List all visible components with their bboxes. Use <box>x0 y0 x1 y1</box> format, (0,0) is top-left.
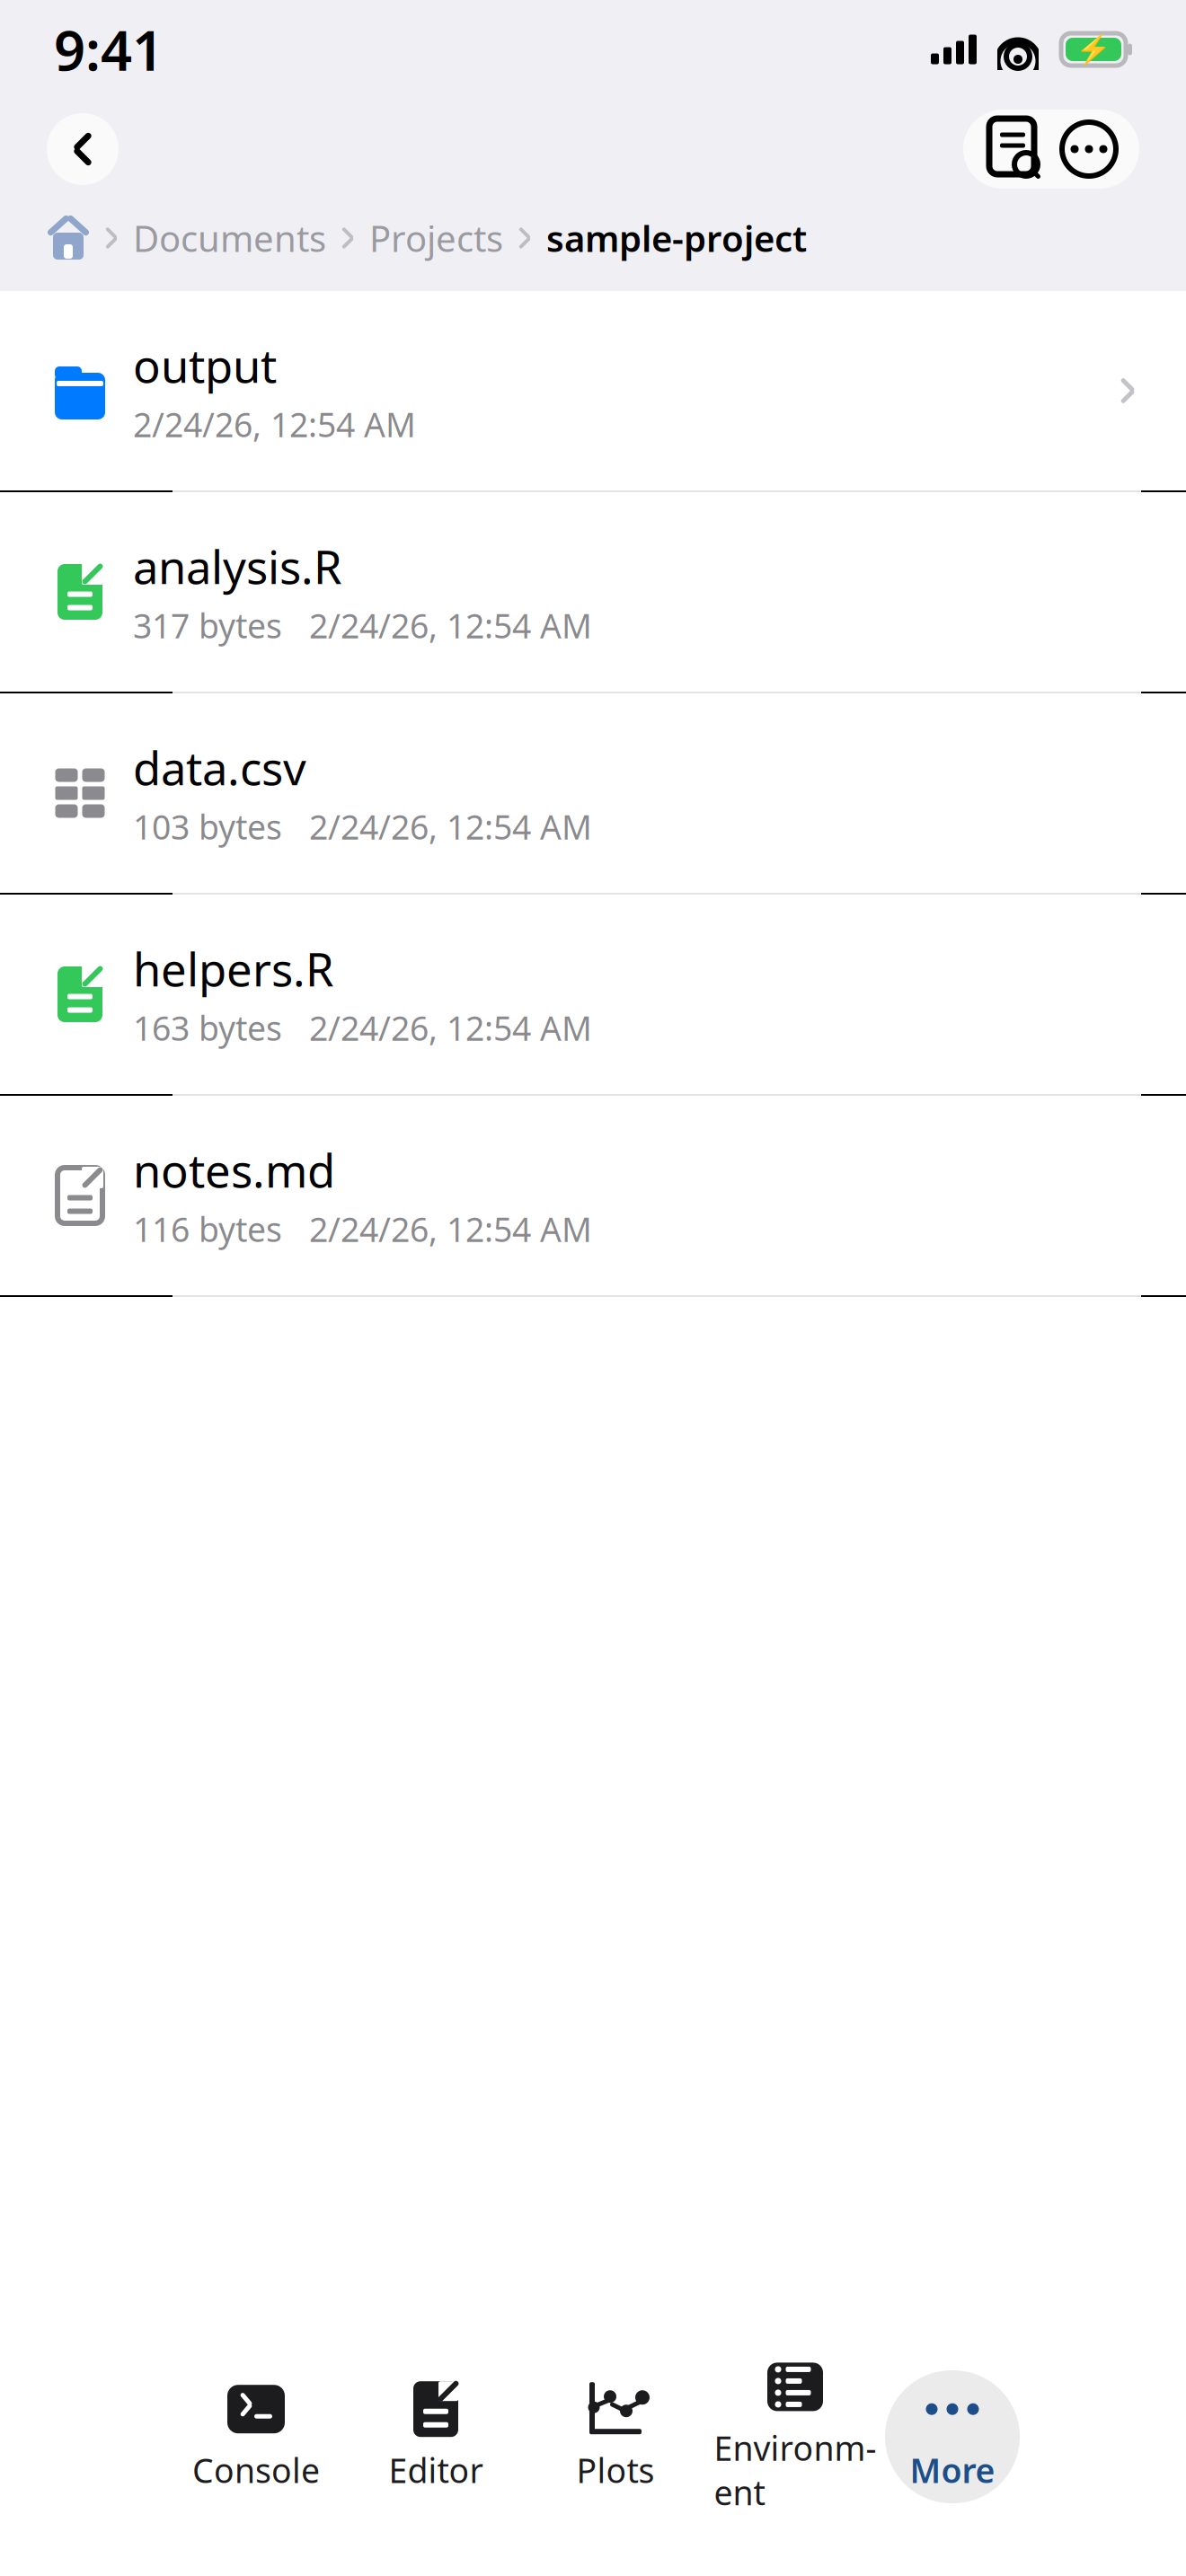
button[interactable]: Home <box>47 216 90 260</box>
button[interactable]: Projects <box>369 214 503 262</box>
staticText: Editor <box>389 2448 483 2492</box>
staticText: output <box>133 335 277 396</box>
button[interactable]: Back <box>47 113 119 185</box>
staticText: data.csv <box>133 738 306 798</box>
staticText: sample-project <box>546 214 807 262</box>
staticText: 9:41 <box>54 13 164 86</box>
button[interactable]: More <box>885 2370 1020 2503</box>
staticText: Plots <box>576 2448 655 2492</box>
button[interactable]: data.csv <box>0 693 1186 895</box>
button[interactable]: Environment <box>705 2370 885 2503</box>
staticText: notes.md <box>133 1140 335 1200</box>
button[interactable]: analysis.R <box>0 492 1186 693</box>
staticText: analysis.R <box>133 536 342 597</box>
staticText: 116 bytes 2/24/26, 12:54 AM <box>133 1207 592 1251</box>
staticText: Console <box>192 2448 320 2492</box>
staticText: More <box>910 2448 995 2492</box>
staticText: 317 bytes 2/24/26, 12:54 AM <box>133 603 592 648</box>
button[interactable]: helpers.R <box>0 895 1186 1096</box>
button[interactable]: More options <box>1051 111 1127 187</box>
staticText: Projects <box>369 214 503 262</box>
staticText: 2/24/26, 12:54 AM <box>133 402 416 446</box>
button[interactable]: Editor <box>346 2370 526 2503</box>
button[interactable]: output <box>0 291 1186 492</box>
staticText: 103 bytes 2/24/26, 12:54 AM <box>133 804 592 849</box>
button[interactable]: notes.md <box>0 1096 1186 1297</box>
staticText: ⚡ <box>1075 33 1111 66</box>
button[interactable]: Plots <box>526 2370 705 2503</box>
staticText: Environment <box>714 2425 876 2515</box>
button[interactable]: Console <box>166 2370 346 2503</box>
button[interactable]: Search files <box>976 111 1051 187</box>
staticText: 163 bytes 2/24/26, 12:54 AM <box>133 1005 592 1050</box>
staticText: helpers.R <box>133 939 334 999</box>
button[interactable]: Documents <box>133 214 326 262</box>
staticText: Documents <box>133 214 326 262</box>
